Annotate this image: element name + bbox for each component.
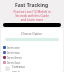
staticText: Continue: [12, 65, 25, 69]
button[interactable]: Item one: [1, 45, 63, 50]
staticText: Sign in: [12, 69, 20, 72]
button[interactable]: Item two: [1, 50, 63, 55]
staticText: Item one: [7, 46, 20, 50]
button[interactable]: Continue: [1, 65, 63, 72]
staticText: Item four: [7, 61, 21, 65]
staticText: Item three: [7, 56, 22, 60]
staticText: Practice Level 12 Mobile in Seconds with…: [13, 10, 51, 22]
button[interactable]: Item four: [1, 60, 63, 65]
staticText: Choose Option: [21, 32, 43, 36]
button[interactable]: [3, 23, 61, 27]
staticText: Item two: [7, 51, 20, 55]
button[interactable]: Item three: [1, 55, 63, 60]
staticText: Fast Tracking: [15, 2, 49, 9]
